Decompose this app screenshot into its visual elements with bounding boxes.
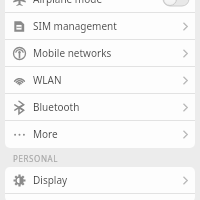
button[interactable]: SIM management: [5, 13, 195, 39]
staticText: More: [33, 127, 175, 141]
staticText: WLAN: [33, 73, 175, 87]
staticText: Bluetooth: [33, 100, 175, 114]
staticText: Airplane mode: [33, 0, 163, 6]
staticText: Display: [33, 173, 175, 187]
staticText: PERSONAL: [13, 153, 59, 164]
staticText: Mobile networks: [33, 46, 175, 60]
button[interactable]: WLAN: [5, 67, 195, 93]
button[interactable]: Bluetooth: [5, 94, 195, 120]
button[interactable]: Airplane mode toggle: [163, 0, 189, 6]
staticText: SIM management: [33, 19, 175, 33]
button[interactable]: Display: [5, 167, 195, 193]
button[interactable]: Airplane mode: [5, 0, 195, 12]
button[interactable]: More: [5, 121, 195, 147]
button[interactable]: Mobile networks: [5, 40, 195, 66]
